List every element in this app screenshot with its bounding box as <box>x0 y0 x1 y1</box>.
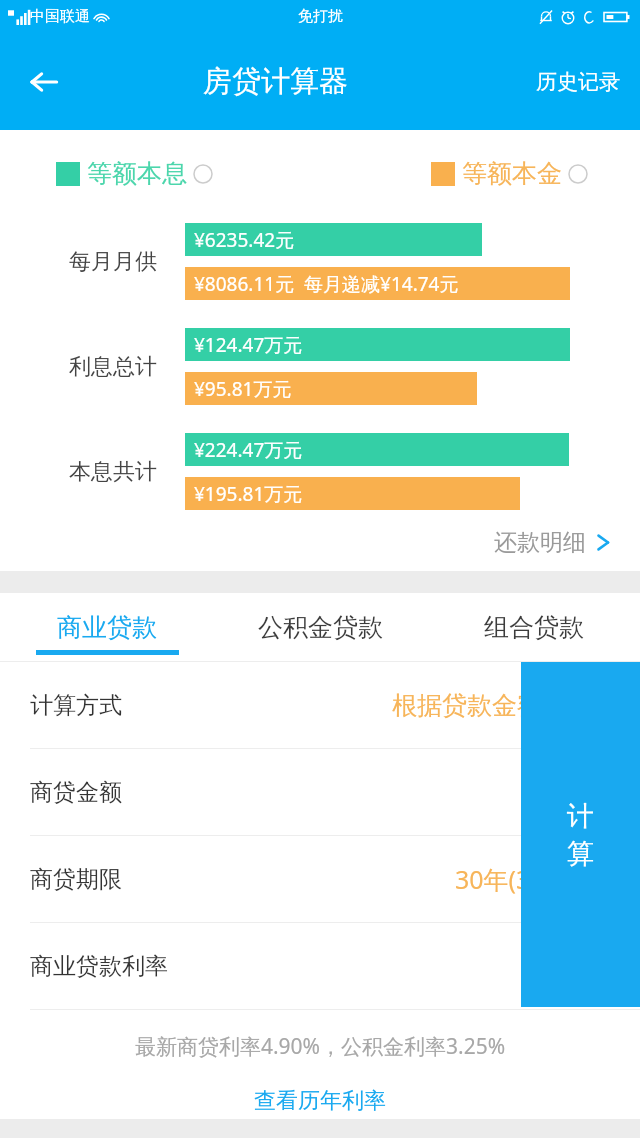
staticText: 公积金贷款 <box>258 612 383 643</box>
staticText: 利息总计 <box>69 353 157 381</box>
button[interactable]: 计算方式 <box>0 662 640 748</box>
staticText: ¥8086.11元 每月递减¥14.74元 <box>194 271 459 297</box>
button[interactable]: 还款明细 <box>488 522 618 563</box>
staticText: 组合贷款 <box>484 612 584 643</box>
staticText: 本息共计 <box>69 458 157 486</box>
staticText: 最新商贷利率4.90%，公积金利率3.25% <box>0 1032 640 1061</box>
staticText: 等额本金 <box>462 158 562 189</box>
staticText: 房贷计算器 <box>203 63 348 100</box>
button[interactable]: 计 <box>521 662 640 1007</box>
staticText: 等额本息 <box>87 158 187 189</box>
staticText: 商业贷款 <box>57 612 157 643</box>
staticText: ¥195.81万元 <box>194 481 303 507</box>
staticText: 计 <box>567 799 594 833</box>
staticText: 根据贷款金额计算 <box>392 690 592 721</box>
button[interactable]: 历史记录 <box>532 63 624 101</box>
staticText: 历史记录 <box>536 69 620 95</box>
button[interactable]: 商贷期限 <box>0 836 640 922</box>
button[interactable]: 公积金贷款 <box>214 593 427 661</box>
staticText: 万元 <box>570 778 616 807</box>
staticText: 商贷期限 <box>30 865 122 894</box>
button[interactable]: 组合贷款 <box>427 593 640 661</box>
staticText: 每月月供 <box>69 248 157 276</box>
staticText: ¥224.47万元 <box>194 437 303 463</box>
staticText: 免打扰 <box>298 7 343 26</box>
button[interactable]: 等额本息 <box>56 158 213 189</box>
staticText: 商业贷款利率 <box>30 952 168 981</box>
staticText: ¥6235.42元 <box>194 227 295 253</box>
button[interactable]: 查看历年利率 <box>244 1083 396 1119</box>
button[interactable]: 商贷金额 <box>0 749 640 835</box>
staticText: 查看历年利率 <box>254 1087 386 1115</box>
button[interactable]: 商业贷款 <box>0 593 214 661</box>
staticText: ¥124.47万元 <box>194 332 303 358</box>
staticText: 商贷金额 <box>30 778 122 807</box>
staticText: 算 <box>567 837 594 871</box>
staticText: 30年(360期) <box>455 862 592 896</box>
staticText: ¥95.81万元 <box>194 376 292 402</box>
button[interactable]: Back <box>16 54 72 110</box>
staticText: 计算方式 <box>30 691 122 720</box>
staticText: 中国联通 <box>30 7 90 26</box>
button[interactable]: 等额本金 <box>431 158 588 189</box>
staticText: 还款明细 <box>494 528 586 557</box>
button[interactable]: 商业贷款利率 <box>0 923 640 1009</box>
